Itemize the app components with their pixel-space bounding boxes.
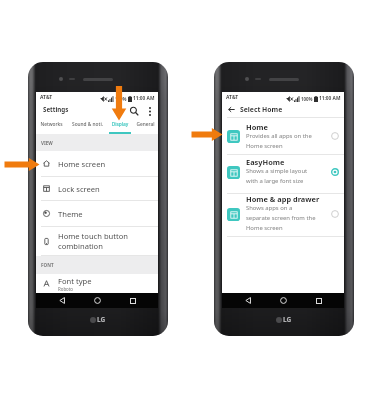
button[interactable]: Recent apps — [309, 293, 329, 308]
staticText: Font type — [58, 276, 92, 286]
button[interactable]: Back — [52, 293, 72, 308]
staticText: 100% — [301, 96, 313, 102]
staticText: VIEW — [41, 140, 53, 146]
button[interactable]: Font type — [36, 274, 158, 293]
staticText: EasyHome — [246, 157, 285, 167]
staticText: combination — [58, 241, 103, 251]
staticText: LG — [97, 315, 106, 324]
staticText: Theme — [58, 209, 83, 219]
staticText: Select Home — [240, 105, 283, 114]
button[interactable]: Home — [87, 293, 107, 308]
staticText: Home & app drawer — [246, 194, 320, 204]
staticText: Home screen — [58, 159, 106, 169]
staticText: 100% — [115, 96, 127, 102]
button[interactable]: Home — [222, 118, 344, 154]
button[interactable]: Back — [222, 102, 344, 117]
button[interactable]: Home touch button — [36, 227, 158, 255]
staticText: AT&T — [226, 94, 239, 101]
staticText: Shows apps on a — [246, 204, 293, 212]
staticText: Roboto — [58, 286, 73, 292]
staticText: Display — [109, 121, 131, 128]
staticText: Home touch button — [58, 231, 129, 241]
staticText: Home screen — [246, 142, 283, 149]
button[interactable]: Display — [109, 116, 131, 134]
button[interactable]: Sound & noti. — [67, 116, 108, 134]
staticText: Sound & noti. — [67, 121, 108, 128]
staticText: LG — [283, 315, 292, 324]
button[interactable]: EasyHome — [222, 155, 344, 193]
button[interactable]: Home — [273, 293, 293, 308]
button[interactable]: Home screen — [36, 151, 158, 176]
staticText: separate screen from the — [246, 214, 316, 222]
staticText: 11:00 AM — [319, 95, 341, 102]
button[interactable]: Networks — [39, 116, 64, 134]
other: Back — [228, 106, 235, 113]
staticText: Home screen — [246, 224, 283, 231]
staticText: Shows a simple layout — [246, 167, 308, 175]
button[interactable]: Home & app drawer — [222, 194, 344, 236]
button[interactable]: Recent apps — [123, 293, 143, 308]
staticText: AT&T — [40, 94, 53, 101]
button[interactable]: Lock screen — [36, 177, 158, 200]
staticText: with a large font size — [246, 177, 304, 184]
staticText: Provides all apps on the — [246, 132, 312, 140]
button[interactable]: Theme — [36, 201, 158, 226]
button[interactable]: Back — [238, 293, 258, 308]
staticText: FONT — [41, 262, 54, 268]
staticText: 11:00 AM — [133, 95, 155, 102]
staticText: Home — [246, 122, 268, 132]
staticText: General — [133, 121, 158, 128]
button[interactable]: Search — [127, 104, 141, 118]
staticText: Networks — [39, 121, 64, 128]
button[interactable]: General — [133, 116, 158, 134]
staticText: Settings — [43, 105, 69, 113]
staticText: Lock screen — [58, 184, 100, 194]
button[interactable]: More options — [144, 105, 156, 117]
